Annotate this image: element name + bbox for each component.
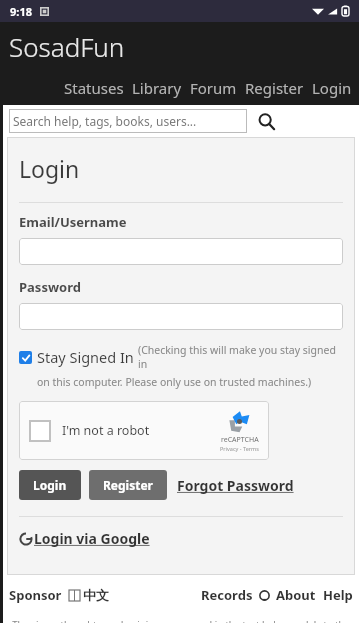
button[interactable]: Register [89, 470, 167, 500]
button[interactable]: Forgot Password [177, 472, 294, 499]
button[interactable]: Search [255, 110, 277, 132]
staticText: Forum [190, 78, 237, 98]
button[interactable]: Search help, tags, books, users... [9, 109, 247, 133]
staticText: Privacy - Terms [220, 445, 259, 452]
other: GitHub [259, 590, 270, 601]
button[interactable]: Stay signed in checkbox [19, 351, 32, 364]
staticText: Login via Google [34, 529, 150, 548]
staticText: I'm not a robot [62, 422, 150, 439]
staticText: Forgot Password [177, 476, 294, 495]
button[interactable]: Login via Google [19, 529, 150, 548]
button[interactable]: Records [201, 586, 253, 604]
button[interactable]: 中文 [83, 587, 109, 603]
staticText: The views, thoughts, and opinions expres… [11, 618, 351, 623]
staticText: on this computer. Please only use on tru… [37, 375, 312, 389]
button[interactable]: Login [19, 470, 81, 500]
staticText: Search help, tags, books, users... [13, 113, 197, 129]
staticText: Login [19, 153, 80, 184]
button[interactable]: Register [241, 76, 308, 100]
button[interactable]: About [276, 586, 316, 604]
staticText: Login [312, 78, 352, 98]
staticText: Sponsor [9, 586, 62, 604]
staticText: Help [323, 586, 353, 604]
staticText: Library [132, 78, 182, 98]
button[interactable] [19, 303, 343, 330]
button[interactable]: Statuses [60, 76, 128, 100]
staticText: Records [201, 586, 253, 604]
staticText: 中文 [83, 587, 109, 603]
staticText: Register [245, 78, 304, 98]
staticText: Email/Username [19, 213, 127, 231]
other: Language icon [69, 590, 80, 601]
staticText: Register [103, 477, 153, 493]
button[interactable]: Login [308, 76, 356, 100]
staticText: Password [19, 278, 81, 296]
staticText: reCAPTCHA [221, 435, 259, 445]
staticText: (Checking this will make you stay signed… [138, 343, 343, 371]
button[interactable]: Stay Signed In [37, 347, 134, 367]
button[interactable]: Library [128, 76, 186, 100]
button[interactable]: Forum [186, 76, 241, 100]
staticText: Statuses [64, 78, 124, 98]
button[interactable]: I'm not a robot [19, 401, 269, 460]
button[interactable]: Sponsor [9, 586, 62, 604]
staticText: SosadFun [9, 29, 125, 64]
staticText: 9:18 [10, 4, 32, 19]
staticText: Login [33, 477, 67, 493]
button[interactable] [19, 238, 343, 265]
staticText: About [276, 586, 316, 604]
button[interactable]: Help [323, 586, 353, 604]
